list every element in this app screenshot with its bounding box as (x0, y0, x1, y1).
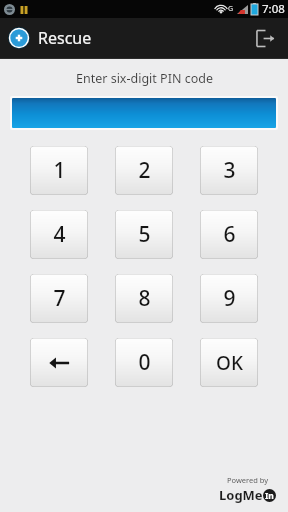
staticText: Enter six-digit PIN code (76, 70, 213, 87)
staticText: OK (216, 350, 243, 376)
staticText: 7:08 (262, 1, 285, 17)
staticText: 3 (223, 156, 236, 185)
button[interactable]: PIN code entry (12, 98, 276, 128)
staticText: 7 (53, 284, 66, 313)
button[interactable]: 2 (115, 146, 173, 195)
button[interactable]: 1 (30, 146, 88, 195)
staticText: 8 (138, 284, 151, 313)
button[interactable]: 3 (200, 146, 258, 195)
button[interactable]: Log out (242, 18, 288, 58)
staticText: LogMe (219, 486, 263, 504)
staticText: 1 (53, 156, 66, 185)
button[interactable]: Backspace (30, 338, 88, 387)
button[interactable]: 7 (30, 274, 88, 323)
staticText: In (265, 490, 274, 502)
button[interactable]: 5 (115, 210, 173, 259)
button[interactable]: 0 (115, 338, 173, 387)
button[interactable]: 6 (200, 210, 258, 259)
staticText: 2 (138, 156, 151, 185)
button[interactable]: OK (200, 338, 258, 387)
button[interactable]: 4 (30, 210, 88, 259)
staticText: G (228, 4, 234, 14)
button[interactable]: 8 (115, 274, 173, 323)
staticText: Powered by (227, 475, 269, 485)
staticText: 4 (53, 220, 66, 249)
staticText: 0 (138, 348, 151, 377)
staticText: 9 (223, 284, 236, 313)
staticText: Rescue (38, 27, 92, 49)
staticText: 5 (138, 220, 151, 249)
staticText: 6 (223, 220, 236, 249)
button[interactable]: 9 (200, 274, 258, 323)
